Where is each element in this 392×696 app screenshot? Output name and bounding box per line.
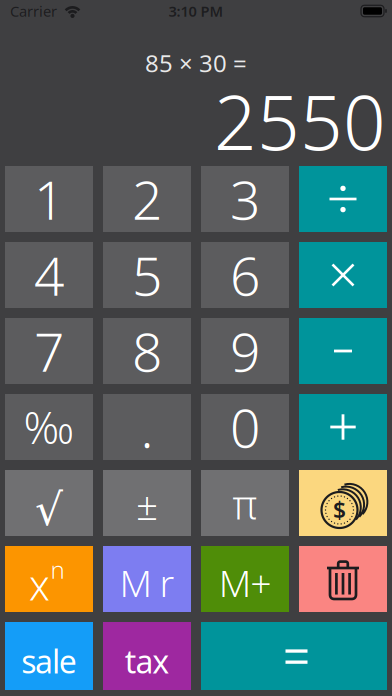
staticText: 4 bbox=[34, 240, 64, 310]
button[interactable]: M+ bbox=[201, 546, 289, 612]
button[interactable]: Clear bbox=[299, 546, 387, 612]
staticText: 0 bbox=[230, 392, 260, 462]
button[interactable]: x bbox=[5, 546, 93, 612]
staticText: x bbox=[29, 557, 50, 612]
staticText: n bbox=[50, 554, 64, 585]
staticText: 9 bbox=[230, 316, 260, 386]
button[interactable]: 2 bbox=[103, 166, 191, 232]
staticText: ‰ bbox=[23, 398, 74, 456]
button[interactable]: . bbox=[103, 394, 191, 460]
staticText: 5 bbox=[132, 240, 162, 310]
staticText: Carrier bbox=[10, 1, 57, 21]
staticText: 6 bbox=[230, 240, 260, 310]
button[interactable]: 9 bbox=[201, 318, 289, 384]
staticText: 3:10 PM bbox=[168, 1, 223, 21]
staticText: √ bbox=[35, 485, 63, 535]
staticText: ± bbox=[136, 479, 158, 531]
staticText: π bbox=[232, 477, 257, 530]
staticText: 1 bbox=[34, 164, 64, 234]
button[interactable]: Divide bbox=[299, 166, 387, 232]
staticText: sale bbox=[21, 640, 77, 682]
button[interactable]: 0 bbox=[201, 394, 289, 460]
button[interactable]: Add bbox=[299, 394, 387, 460]
button[interactable]: Currency conversion bbox=[299, 470, 387, 536]
button[interactable]: Subtract bbox=[299, 318, 387, 384]
staticText: M r bbox=[119, 558, 174, 607]
button[interactable]: 5 bbox=[103, 242, 191, 308]
button[interactable]: ± bbox=[103, 470, 191, 536]
button[interactable]: tax bbox=[103, 622, 191, 690]
staticText: 2 bbox=[132, 164, 162, 234]
button[interactable]: Equals bbox=[201, 622, 387, 690]
button[interactable]: sale bbox=[5, 622, 93, 690]
staticText: 8 bbox=[132, 316, 162, 386]
staticText: 3 bbox=[230, 164, 260, 234]
button[interactable]: M r bbox=[103, 546, 191, 612]
staticText: . bbox=[140, 392, 153, 462]
staticText: M+ bbox=[219, 558, 271, 607]
button[interactable]: 3 bbox=[201, 166, 289, 232]
button[interactable]: π bbox=[201, 470, 289, 536]
button[interactable]: 1 bbox=[5, 166, 93, 232]
button[interactable]: 6 bbox=[201, 242, 289, 308]
button[interactable]: 8 bbox=[103, 318, 191, 384]
button[interactable]: Multiply bbox=[299, 242, 387, 308]
staticText: 7 bbox=[34, 316, 64, 386]
staticText: 2550 bbox=[214, 71, 386, 171]
button[interactable]: √ bbox=[5, 470, 93, 536]
staticText: 85 × 30 = bbox=[145, 47, 247, 79]
button[interactable]: ‰ bbox=[5, 394, 93, 460]
staticText: tax bbox=[125, 640, 169, 682]
button[interactable]: 4 bbox=[5, 242, 93, 308]
staticText: $ bbox=[333, 495, 346, 525]
button[interactable]: 7 bbox=[5, 318, 93, 384]
